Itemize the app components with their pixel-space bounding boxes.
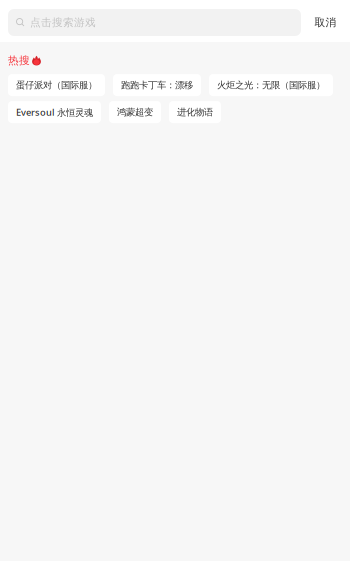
button[interactable]: 蛋仔派对（国际服）	[8, 74, 105, 96]
staticText: 热搜	[8, 54, 30, 67]
button[interactable]: 点击搜索游戏	[8, 9, 301, 36]
staticText: 进化物语	[177, 106, 213, 118]
staticText: 跑跑卡丁车：漂移	[121, 79, 193, 91]
button[interactable]: 进化物语	[169, 101, 221, 123]
staticText: 火炬之光：无限（国际服）	[217, 79, 325, 91]
staticText: 蛋仔派对（国际服）	[16, 79, 97, 91]
staticText: 点击搜索游戏	[30, 16, 96, 29]
staticText: Eversoul 永恒灵魂	[16, 106, 93, 118]
button[interactable]: 鸿蒙超变	[109, 101, 161, 123]
staticText: 取消	[314, 16, 336, 29]
staticText: 鸿蒙超变	[117, 106, 153, 118]
button[interactable]: 取消	[301, 9, 350, 36]
button[interactable]: Eversoul 永恒灵魂	[8, 101, 101, 123]
button[interactable]: 跑跑卡丁车：漂移	[113, 74, 201, 96]
button[interactable]: 火炬之光：无限（国际服）	[209, 74, 333, 96]
